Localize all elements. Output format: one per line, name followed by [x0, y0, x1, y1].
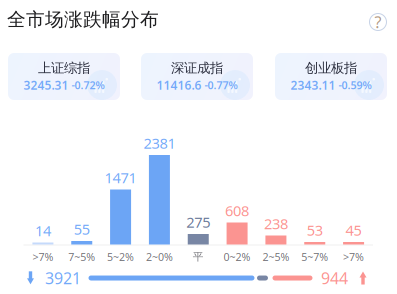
staticText: 5~7% [301, 250, 328, 264]
staticText: 608 [225, 201, 249, 220]
staticText: 2~5% [262, 250, 289, 264]
staticText: 创业板指 [305, 60, 357, 76]
staticText: 2~0% [146, 250, 173, 264]
staticText: 3245.31 [23, 77, 68, 93]
staticText: ? [374, 11, 381, 33]
staticText: -0.72% [71, 78, 104, 92]
button[interactable]: 上证综指 [8, 53, 120, 100]
button[interactable]: 帮助 [369, 13, 386, 30]
staticText: 上证综指 [38, 60, 90, 76]
staticText: 5~2% [107, 250, 134, 264]
staticText: 275 [186, 212, 210, 232]
staticText: -0.77% [204, 78, 237, 92]
staticText: >7% [32, 250, 53, 264]
staticText: 1471 [105, 168, 137, 187]
staticText: 944 [321, 267, 348, 289]
staticText: 11416.6 [156, 77, 201, 93]
staticText: 全市场涨跌幅分布 [7, 8, 159, 31]
staticText: 2343.11 [290, 77, 335, 93]
button[interactable]: 深证成指 [141, 53, 253, 100]
staticText: 0~2% [224, 250, 251, 264]
staticText: 53 [307, 220, 323, 240]
staticText: 7~5% [68, 250, 95, 264]
staticText: 2381 [143, 133, 175, 153]
staticText: >7% [343, 250, 364, 264]
staticText: 55 [74, 219, 90, 239]
staticText: 深证成指 [171, 60, 223, 76]
staticText: 3921 [45, 267, 81, 289]
staticText: 45 [346, 220, 362, 240]
button[interactable]: 创业板指 [275, 53, 387, 100]
staticText: 238 [264, 214, 288, 233]
staticText: 14 [35, 221, 51, 240]
staticText: 平 [193, 250, 204, 263]
staticText: -0.59% [338, 78, 371, 92]
